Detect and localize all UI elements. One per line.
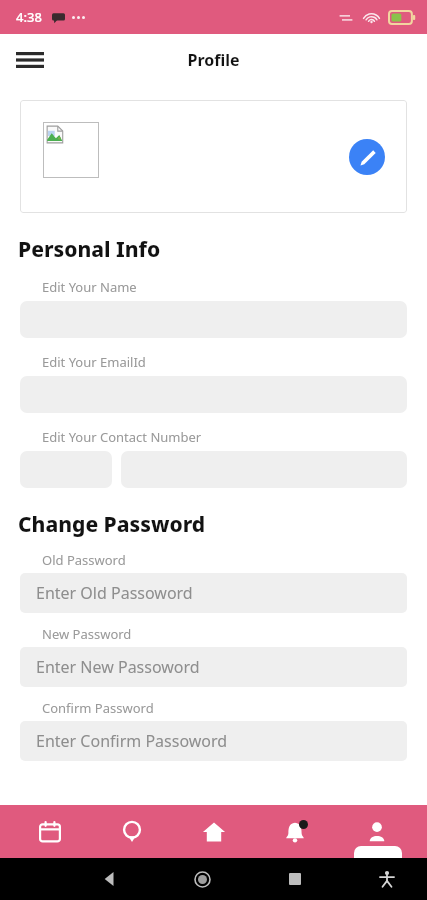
button[interactable]: Home (182, 805, 246, 858)
staticText: Profile (187, 49, 240, 71)
button[interactable]: Location (100, 805, 164, 858)
staticText: Enter Old Passoword (36, 582, 193, 604)
button[interactable]: Accessibility (367, 859, 407, 899)
staticText: Enter New Passoword (36, 656, 200, 678)
button[interactable]: Calendar (18, 805, 82, 858)
button[interactable]: Recent apps (275, 859, 315, 899)
button[interactable]: Home (182, 859, 222, 899)
staticText: Personal Info (18, 235, 161, 264)
staticText: Edit Your EmailId (42, 353, 146, 371)
button[interactable]: Notifications (263, 805, 327, 858)
staticText: Edit Your Contact Number (42, 428, 202, 446)
staticText: New Password (42, 625, 132, 643)
button[interactable]: Open navigation menu (8, 38, 52, 82)
staticText: Confirm Password (42, 699, 154, 717)
staticText: Edit Your Name (42, 278, 137, 296)
button[interactable]: Profile (345, 805, 409, 858)
staticText: Enter Confirm Passoword (36, 730, 228, 752)
button[interactable]: Enter New Passoword (20, 647, 407, 687)
staticText: 4:38 (16, 8, 42, 26)
staticText: Old Password (42, 551, 126, 569)
button[interactable]: Edit profile picture (349, 139, 385, 175)
button[interactable]: Enter Confirm Passoword (20, 721, 407, 761)
staticText: Change Password (18, 510, 206, 539)
button[interactable]: Enter Old Passoword (20, 573, 407, 613)
button[interactable]: Back (90, 859, 130, 899)
